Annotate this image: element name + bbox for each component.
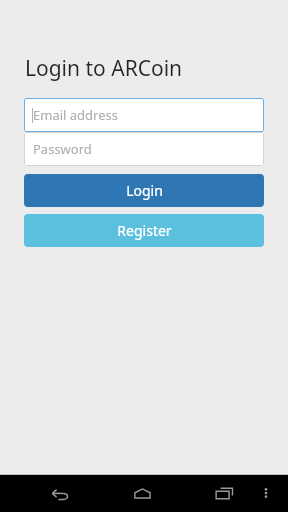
button[interactable]: Login <box>24 174 264 207</box>
staticText: Register <box>117 221 172 240</box>
staticText: Login <box>126 181 163 200</box>
button[interactable]: Recent apps <box>206 475 242 511</box>
button[interactable]: More options <box>254 481 278 505</box>
staticText: Email address <box>33 106 118 124</box>
button[interactable]: Password <box>24 132 264 166</box>
staticText: Password <box>33 140 92 158</box>
staticText: Login to ARCoin <box>25 54 183 83</box>
button[interactable]: Home <box>124 475 160 511</box>
button[interactable]: Email address <box>24 98 264 132</box>
button[interactable]: Register <box>24 214 264 247</box>
button[interactable]: Back <box>42 475 78 511</box>
